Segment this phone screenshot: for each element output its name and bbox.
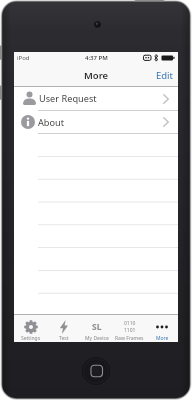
button[interactable]: Settings (14, 315, 47, 342)
staticText: 4:37 PM (85, 54, 108, 62)
button[interactable]: Edit (156, 69, 178, 82)
staticText: Raw Frames (115, 335, 144, 342)
staticText: More (156, 335, 169, 342)
button[interactable]: About (14, 111, 178, 133)
button[interactable]: Test (47, 315, 80, 342)
staticText: Test (59, 335, 69, 342)
button[interactable]: More (146, 315, 178, 342)
staticText: Edit (156, 69, 174, 82)
staticText: SL (92, 321, 102, 333)
staticText: My Device (85, 335, 109, 342)
staticText: 1101 (124, 327, 136, 334)
staticText: User Request (39, 92, 97, 105)
staticText: About (38, 116, 65, 129)
button[interactable]: User Request (14, 87, 178, 110)
button[interactable]: SL (80, 315, 113, 342)
staticText: iPod (17, 54, 30, 62)
staticText: Settings (21, 335, 41, 342)
staticText: More (84, 69, 109, 82)
staticText: 0110 (124, 320, 136, 327)
button[interactable]: 0110 (113, 315, 146, 342)
